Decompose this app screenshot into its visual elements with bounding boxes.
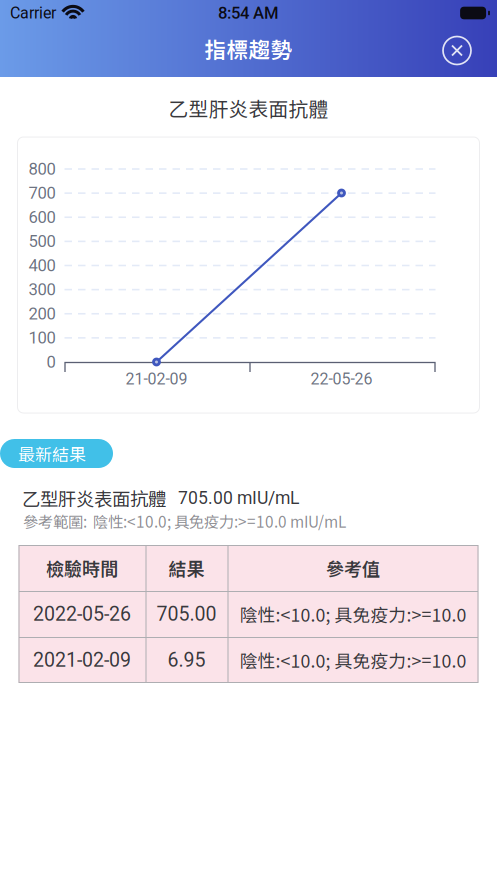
staticText: 乙型肝炎表面抗體 [168,94,328,122]
staticText: 705.00 [156,602,216,625]
staticText: 檢驗時間 [46,555,118,581]
staticText: 陰性:<10.0; 具免疫力:>=10.0 [239,647,466,673]
staticText: 0 [46,352,55,372]
staticText: 參考範圍: 陰性:<10.0; 具免疫力:>=10.0 mIU/mL [23,510,346,532]
staticText: 705.00 mIU/mL [178,488,299,508]
staticText: 6.95 [167,648,205,671]
staticText: 200 [28,304,55,323]
staticText: 指標趨勢 [204,33,292,64]
staticText: 21-02-09 [125,370,187,388]
staticText: 結果 [168,555,204,581]
staticText: 800 [28,159,55,179]
staticText: 22-05-26 [310,370,372,388]
staticText: 陰性:<10.0; 具免疫力:>=10.0 [239,601,466,627]
staticText: 2021-02-09 [33,648,131,671]
button[interactable]: Close [441,34,473,66]
staticText: 參考值 [326,555,380,581]
staticText: 最新結果 [18,441,86,466]
staticText: 8:54 AM [218,3,279,23]
staticText: 600 [28,207,55,227]
staticText: 500 [28,232,55,251]
staticText: Carrier [10,4,56,22]
staticText: 2022-05-26 [33,602,131,625]
staticText: 乙型肝炎表面抗體 [22,485,166,511]
staticText: 300 [28,280,55,299]
staticText: 100 [28,328,55,348]
staticText: 700 [28,183,55,203]
staticText: 400 [28,256,55,275]
